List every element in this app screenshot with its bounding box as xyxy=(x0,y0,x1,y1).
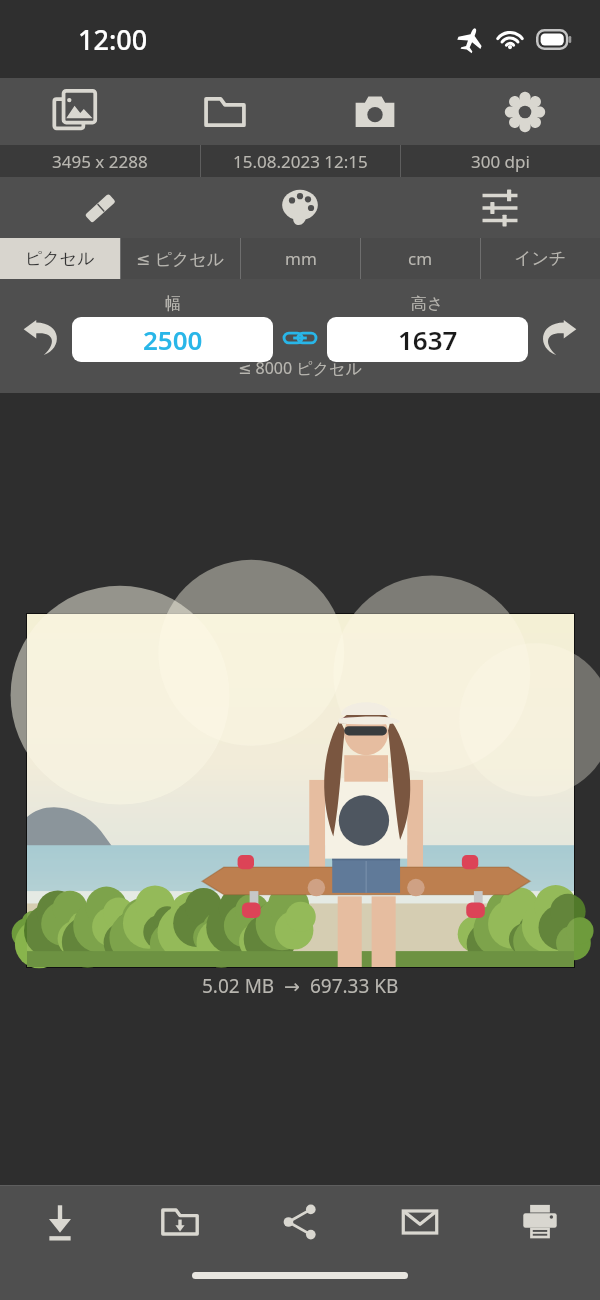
staticText: 300 dpi xyxy=(471,150,530,173)
button[interactable]: Redo xyxy=(528,307,586,365)
staticText: 2500 xyxy=(143,322,203,357)
button[interactable]: Palette xyxy=(200,177,400,238)
staticText: 高さ xyxy=(411,294,444,314)
staticText: 5.02 MB → 697.33 KB xyxy=(202,973,399,999)
staticText: cm xyxy=(408,247,433,270)
staticText: ≤ 8000 ピクセル xyxy=(238,357,362,379)
button[interactable]: Settings xyxy=(450,78,600,145)
button[interactable]: cm xyxy=(361,238,480,279)
button[interactable]: Photo library xyxy=(0,78,150,145)
button[interactable]: Link aspect ratio xyxy=(279,307,321,349)
button[interactable]: ≤ ピクセル xyxy=(121,238,240,279)
button[interactable]: Save to folder xyxy=(120,1186,240,1258)
staticText: mm xyxy=(285,247,317,270)
button[interactable]: Save xyxy=(0,1186,120,1258)
button[interactable]: Share xyxy=(240,1186,360,1258)
staticText: 1637 xyxy=(398,322,458,357)
button[interactable]: Email xyxy=(360,1186,480,1258)
button[interactable]: Eraser xyxy=(0,177,200,238)
button[interactable]: 1637 xyxy=(327,317,528,362)
staticText: 幅 xyxy=(165,294,181,314)
staticText: 3495 x 2288 xyxy=(52,150,148,173)
staticText: インチ xyxy=(514,248,567,269)
button[interactable]: Open folder xyxy=(150,78,300,145)
staticText: ピクセル xyxy=(25,248,95,269)
staticText: ≤ ピクセル xyxy=(136,247,225,270)
button[interactable]: ピクセル xyxy=(0,238,120,279)
button[interactable]: mm xyxy=(241,238,360,279)
staticText: 15.08.2023 12:15 xyxy=(233,150,368,173)
staticText: 12:00 xyxy=(78,21,148,58)
button[interactable]: Adjust xyxy=(400,177,600,238)
button[interactable]: Undo xyxy=(14,307,72,365)
button[interactable]: Preview image xyxy=(27,614,574,967)
button[interactable]: Camera xyxy=(300,78,450,145)
button[interactable]: Print xyxy=(480,1186,600,1258)
button[interactable]: 2500 xyxy=(72,317,273,362)
button[interactable]: インチ xyxy=(481,238,600,279)
